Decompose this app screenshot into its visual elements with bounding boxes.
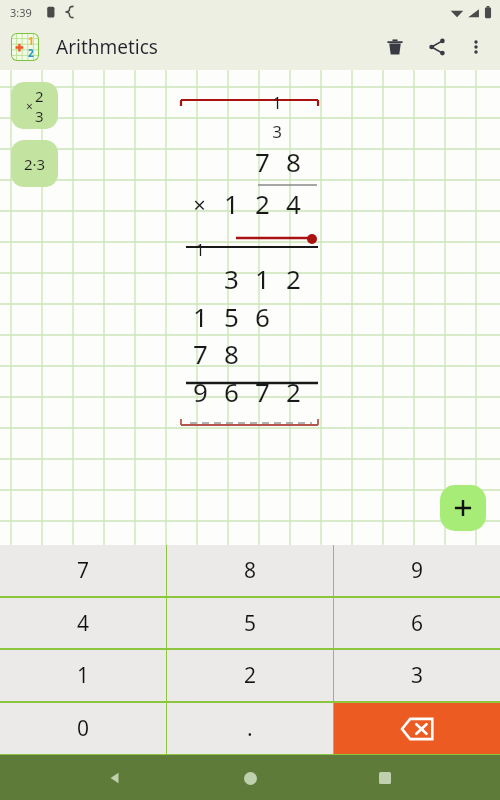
button[interactable]: 6 <box>334 598 500 648</box>
staticText: × <box>193 189 206 219</box>
staticText: 2 <box>28 46 34 60</box>
staticText: 0 <box>77 714 90 743</box>
button[interactable]: 7 <box>0 545 166 596</box>
staticText: 2 <box>286 261 301 293</box>
button[interactable]: 9 <box>334 545 500 596</box>
button[interactable]: 2 <box>167 650 333 701</box>
staticText: 8 <box>244 556 257 585</box>
staticText: 6 <box>224 374 239 406</box>
staticText: 9 <box>193 374 208 406</box>
staticText: 1 <box>272 91 282 114</box>
button[interactable]: . <box>167 703 333 754</box>
staticText: 2·3 <box>24 154 46 174</box>
staticText: 8 <box>286 144 301 176</box>
button[interactable]: 4 <box>0 598 166 648</box>
button[interactable]: Delete <box>374 26 416 68</box>
button[interactable]: 8 <box>167 545 333 596</box>
staticText: 1 <box>195 239 205 261</box>
staticText: 5 <box>224 299 239 331</box>
staticText: 3:39 <box>10 5 32 20</box>
staticText: 2 <box>35 86 44 106</box>
staticText: 1 <box>193 299 208 331</box>
staticText: 9 <box>411 556 424 585</box>
staticText: 7 <box>255 144 270 176</box>
button[interactable]: Share <box>416 26 458 68</box>
staticText: 6 <box>411 609 424 638</box>
button[interactable]: 5 <box>167 598 333 648</box>
button[interactable]: More options <box>458 29 494 65</box>
button[interactable]: 1 <box>0 650 166 701</box>
staticText: 3 <box>224 261 239 293</box>
button[interactable]: Backspace <box>334 703 500 754</box>
staticText: 6 <box>255 299 270 331</box>
staticText: 8 <box>224 336 239 368</box>
staticText: 2 <box>286 374 301 406</box>
staticText: × <box>26 98 33 114</box>
staticText: 1 <box>28 34 34 48</box>
button[interactable]: × <box>11 82 58 129</box>
staticText: 3 <box>411 661 424 690</box>
button[interactable]: Back <box>95 758 135 798</box>
button[interactable]: App icon <box>11 33 39 61</box>
staticText: 7 <box>77 556 90 585</box>
staticText: Arithmetics <box>56 34 158 60</box>
staticText: 5 <box>244 609 257 638</box>
button[interactable]: Add <box>440 485 486 531</box>
staticText: . <box>247 714 253 743</box>
staticText: 7 <box>255 374 270 406</box>
staticText: 1 <box>255 261 270 293</box>
staticText: 7 <box>193 336 208 368</box>
button[interactable]: 0 <box>0 703 166 754</box>
staticText: 1 <box>224 186 239 218</box>
staticText: 1 <box>77 661 90 690</box>
staticText: 3 <box>35 106 44 126</box>
staticText: 2 <box>244 661 257 690</box>
staticText: 3 <box>272 120 282 143</box>
staticText: 2 <box>255 186 270 218</box>
button[interactable]: 2·3 <box>11 140 58 187</box>
staticText: 4 <box>286 186 301 218</box>
button[interactable]: Recents <box>365 758 405 798</box>
button[interactable]: Home <box>230 758 270 798</box>
staticText: 4 <box>77 609 90 638</box>
button[interactable]: 3 <box>334 650 500 701</box>
